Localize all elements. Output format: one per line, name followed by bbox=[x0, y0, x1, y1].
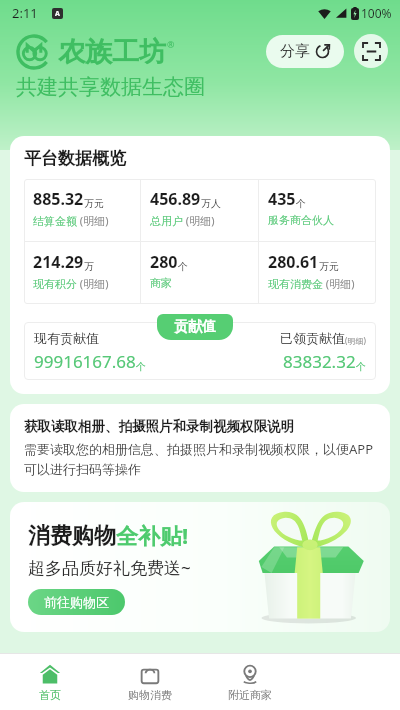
staticText: 贡献值 bbox=[174, 318, 216, 336]
staticText: 个 bbox=[136, 360, 146, 373]
button[interactable]: 456.89 bbox=[141, 179, 258, 241]
staticText: 280 bbox=[150, 251, 178, 273]
staticText: 需要读取您的相册信息、拍摄照片和录制视频权限，以便APP可以进行扫码等操作 bbox=[24, 440, 376, 478]
staticText: 214.29 bbox=[33, 251, 84, 273]
staticText: (明细) bbox=[77, 276, 109, 291]
staticText: 附近商家 bbox=[228, 688, 272, 702]
staticText: 万元 bbox=[319, 260, 339, 273]
button[interactable]: 附近商家 bbox=[200, 654, 300, 710]
staticText: (明细) bbox=[323, 276, 355, 291]
staticText: 前往购物区 bbox=[44, 594, 109, 610]
button[interactable]: 贡献值 bbox=[157, 314, 233, 340]
staticText: 个 bbox=[296, 197, 306, 210]
staticText: 分享 bbox=[280, 42, 310, 61]
staticText: 总用户 bbox=[150, 214, 183, 228]
button[interactable]: 已领贡献值 bbox=[280, 330, 366, 373]
button[interactable]: 扫一扫 bbox=[354, 34, 388, 68]
button[interactable]: 280 bbox=[141, 242, 258, 304]
button[interactable]: 分享 bbox=[266, 35, 344, 68]
button[interactable]: 现有贡献值 bbox=[34, 330, 146, 373]
staticText: 已领贡献值 bbox=[280, 330, 345, 346]
button[interactable]: 885.32 bbox=[24, 179, 140, 241]
staticText: 456.89 bbox=[150, 188, 201, 210]
staticText: 万人 bbox=[201, 197, 221, 210]
button[interactable]: 435 bbox=[259, 179, 376, 241]
staticText: 99916167.68 bbox=[34, 350, 136, 373]
staticText: 全补贴! bbox=[116, 520, 189, 550]
staticText: 现有贡献值 bbox=[34, 330, 99, 346]
staticText: 共建共享数据生态圈 bbox=[16, 74, 205, 100]
staticText: 万元 bbox=[84, 197, 104, 210]
staticText: 首页 bbox=[39, 688, 61, 702]
button[interactable]: 214.29 bbox=[24, 242, 140, 304]
staticText: 消费购物 bbox=[28, 522, 116, 550]
staticText: 获取读取相册、拍摄照片和录制视频权限说明 bbox=[24, 418, 294, 435]
staticText: 万 bbox=[84, 260, 94, 273]
staticText: A bbox=[55, 9, 60, 19]
button[interactable]: 购物消费 bbox=[100, 654, 200, 710]
staticText: 平台数据概览 bbox=[24, 148, 126, 169]
staticText: (明细) bbox=[345, 335, 366, 346]
staticText: 100% bbox=[361, 5, 392, 21]
button[interactable]: 消费购物 bbox=[10, 502, 390, 632]
staticText: ® bbox=[167, 38, 175, 50]
staticText: 商家 bbox=[150, 276, 172, 290]
staticText: 个 bbox=[178, 260, 188, 273]
staticText: 农族工坊 bbox=[58, 35, 166, 69]
staticText: 服务商合伙人 bbox=[268, 213, 334, 227]
staticText: 280.61 bbox=[268, 251, 319, 273]
staticText: 435 bbox=[268, 188, 296, 210]
staticText: (明细) bbox=[77, 213, 109, 228]
button[interactable]: 首页 bbox=[0, 654, 100, 710]
staticText: 个 bbox=[356, 360, 366, 373]
staticText: 超多品质好礼免费送~ bbox=[28, 556, 191, 579]
button[interactable]: 前往购物区 bbox=[28, 589, 125, 615]
staticText: 现有积分 bbox=[33, 277, 77, 291]
staticText: 结算金额 bbox=[33, 214, 77, 228]
staticText: 2:11 bbox=[12, 4, 38, 22]
staticText: 83832.32 bbox=[283, 350, 356, 373]
staticText: 885.32 bbox=[33, 188, 84, 210]
staticText: (明细) bbox=[183, 213, 215, 228]
staticText: 购物消费 bbox=[128, 688, 172, 702]
staticText: 现有消费金 bbox=[268, 277, 323, 291]
button[interactable]: 280.61 bbox=[259, 242, 376, 304]
